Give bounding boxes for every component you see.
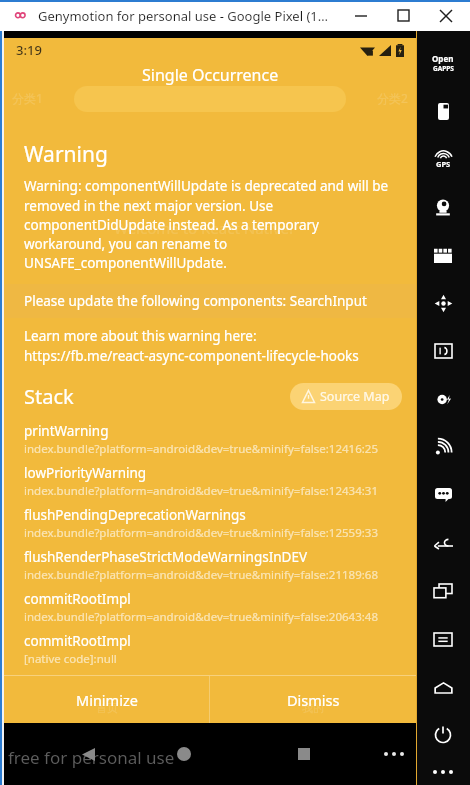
button[interactable]: Network xyxy=(416,423,470,471)
button[interactable]: Home xyxy=(416,663,470,711)
staticText: index.bundle?platform=android&dev=true&m… xyxy=(24,483,379,499)
staticText: free for personal use xyxy=(8,746,175,769)
button[interactable]: Power xyxy=(416,711,470,759)
staticText: Single Occurrence xyxy=(142,64,279,86)
button[interactable]: printWarning xyxy=(4,422,416,457)
staticText: Learn more about this warning here: http… xyxy=(24,327,359,365)
button[interactable]: SMS xyxy=(416,471,470,519)
button[interactable]: Close window xyxy=(424,0,468,31)
button[interactable]: Back xyxy=(64,730,112,778)
button[interactable]: Dismiss xyxy=(210,676,416,723)
staticText: lowPriorityWarning xyxy=(24,464,147,482)
staticText: Please update the following components: … xyxy=(24,292,367,310)
staticText: Open xyxy=(432,53,454,64)
button[interactable]: Recent apps xyxy=(416,567,470,615)
button[interactable]: Maximize window xyxy=(382,0,424,31)
button[interactable]: Home xyxy=(160,730,208,778)
button[interactable]: Camera xyxy=(416,183,470,231)
staticText: [native code]:null xyxy=(24,651,117,667)
staticText: index.bundle?platform=android&dev=true&m… xyxy=(24,525,379,541)
button[interactable]: lowPriorityWarning xyxy=(4,457,416,499)
staticText: Solid Button xyxy=(174,281,255,300)
staticText: 分类1 xyxy=(12,90,43,106)
staticText: 3:19 xyxy=(16,41,42,59)
staticText: GPS xyxy=(436,159,451,169)
button[interactable]: Open GApps xyxy=(416,39,470,87)
staticText: Warning xyxy=(24,140,108,169)
staticText: 我的 xyxy=(302,701,324,715)
button[interactable]: Identifiers xyxy=(416,327,470,375)
staticText: flushPendingDeprecationWarnings xyxy=(24,506,246,524)
button[interactable]: commitRootImpl xyxy=(4,625,416,667)
staticText: commitRootImpl xyxy=(24,590,131,608)
staticText: Stack xyxy=(24,383,74,410)
button[interactable]: GPS xyxy=(416,135,470,183)
staticText: Source Map xyxy=(320,388,390,405)
button[interactable]: Menu xyxy=(416,615,470,663)
staticText: 分类2 xyxy=(377,90,408,106)
staticText: index.bundle?platform=android&dev=true&m… xyxy=(24,567,379,583)
button[interactable]: Recent apps xyxy=(280,730,328,778)
staticText: printWarning xyxy=(24,422,109,440)
button[interactable]: Minimize window xyxy=(340,0,382,31)
button[interactable]: Battery xyxy=(416,87,470,135)
button[interactable]: More options xyxy=(372,732,416,776)
button[interactable]: Screen record xyxy=(416,231,470,279)
staticText: flushRenderPhaseStrictModeWarningsInDEV xyxy=(24,548,308,566)
button[interactable]: flushRenderPhaseStrictModeWarningsInDEV xyxy=(4,541,416,583)
staticText: Warning: componentWillUpdate is deprecat… xyxy=(24,177,400,272)
button[interactable]: Disk IO xyxy=(416,375,470,423)
button[interactable]: Move xyxy=(416,279,470,327)
staticText: Dismiss xyxy=(287,690,340,710)
button[interactable]: flushPendingDeprecationWarnings xyxy=(4,499,416,541)
staticText: Welcome to React Native! xyxy=(114,218,293,238)
button[interactable]: More xyxy=(416,759,470,785)
button[interactable]: commitRootImpl xyxy=(4,583,416,625)
staticText: Minimize xyxy=(76,690,138,710)
button[interactable]: Source Map xyxy=(290,383,402,410)
staticText: index.bundle?platform=android&dev=true&m… xyxy=(24,441,379,457)
staticText: GAPPS xyxy=(433,64,454,73)
button[interactable]: Back xyxy=(416,519,470,567)
button[interactable]: Minimize xyxy=(4,676,209,723)
staticText: commitRootImpl xyxy=(24,632,131,650)
staticText: Genymotion for personal use - Google Pix… xyxy=(38,7,329,25)
staticText: 首页 xyxy=(96,701,118,715)
staticText: index.bundle?platform=android&dev=true&m… xyxy=(24,609,379,625)
